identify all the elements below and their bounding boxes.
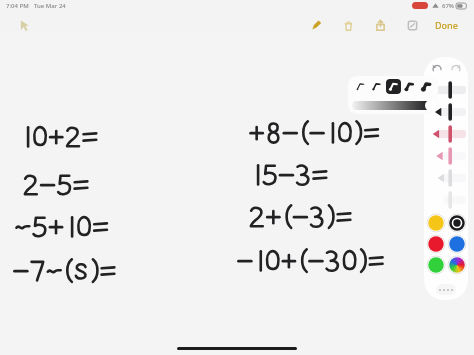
button[interactable]: Yellow bbox=[427, 214, 445, 232]
button[interactable]: Share bbox=[369, 14, 391, 36]
button[interactable]: Highlighter bbox=[426, 123, 466, 145]
button[interactable]: Lasso bbox=[426, 189, 466, 211]
button[interactable]: Stroke width 5 bbox=[419, 79, 434, 94]
button[interactable]: Custom colour bbox=[448, 256, 466, 274]
button[interactable]: Marker pen bbox=[426, 101, 466, 123]
button[interactable]: Slider handle bbox=[425, 100, 436, 111]
staticText: 7:04 PM bbox=[6, 2, 29, 10]
button[interactable]: Ruler bbox=[426, 167, 466, 189]
button[interactable]: Delete bbox=[337, 14, 359, 36]
button[interactable]: Fountain pen bbox=[426, 79, 466, 101]
staticText: Done bbox=[435, 19, 458, 31]
button[interactable]: More options bbox=[436, 284, 456, 295]
button[interactable]: Redo bbox=[448, 61, 463, 76]
button[interactable]: Green bbox=[427, 256, 445, 274]
button[interactable]: Stroke width 1 bbox=[353, 79, 368, 94]
button[interactable]: Done bbox=[431, 16, 462, 34]
staticText: Tue Mar 24 bbox=[34, 2, 66, 10]
button[interactable]: Eraser bbox=[426, 145, 466, 167]
button[interactable]: Stroke width 2 bbox=[369, 79, 384, 94]
button[interactable]: Red bbox=[427, 235, 445, 253]
button[interactable]: Stroke width 4 bbox=[402, 79, 417, 94]
button[interactable]: Black bbox=[448, 214, 466, 232]
button[interactable]: Pen bbox=[305, 14, 327, 36]
button[interactable]: Expand bbox=[401, 14, 423, 36]
button[interactable]: Stroke width 3 bbox=[386, 79, 401, 94]
button[interactable]: Undo bbox=[429, 61, 444, 76]
button[interactable]: Blue bbox=[448, 235, 466, 253]
staticText: 67% bbox=[442, 2, 454, 10]
button[interactable]: Selection tool bbox=[18, 19, 31, 32]
button[interactable]: Opacity slider bbox=[352, 101, 434, 110]
